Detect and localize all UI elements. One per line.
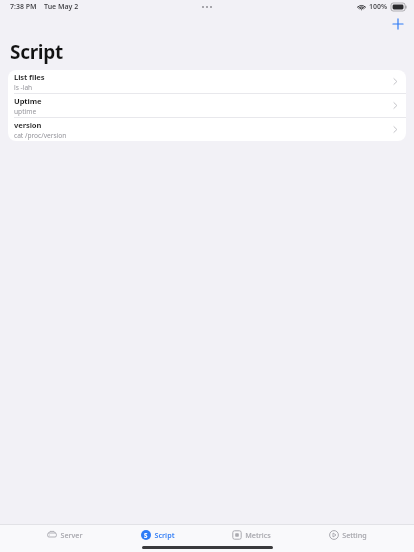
staticText: 100% (369, 2, 388, 12)
button[interactable]: Add script (388, 14, 408, 34)
button[interactable]: Setting (319, 528, 377, 542)
staticText: uptime (14, 107, 37, 116)
staticText: List files (14, 72, 45, 82)
staticText: cat /proc/version (14, 131, 67, 140)
staticText: Script (10, 39, 63, 65)
staticText: Script (154, 530, 175, 540)
button[interactable]: Metrics (222, 528, 281, 542)
button[interactable]: Uptime (8, 94, 406, 117)
button[interactable]: Server (37, 528, 93, 542)
staticText: S (144, 531, 148, 539)
staticText: Metrics (245, 530, 271, 540)
staticText: Server (60, 530, 83, 540)
button[interactable]: version (8, 118, 406, 141)
staticText: Setting (342, 530, 367, 540)
staticText: ls -lah (14, 83, 33, 92)
button[interactable]: S (131, 528, 185, 542)
staticText: 7:38 PM (10, 2, 37, 12)
button[interactable]: List files (8, 70, 406, 93)
staticText: version (14, 120, 42, 130)
staticText: Uptime (14, 96, 42, 106)
staticText: Tue May 2 (44, 2, 79, 12)
